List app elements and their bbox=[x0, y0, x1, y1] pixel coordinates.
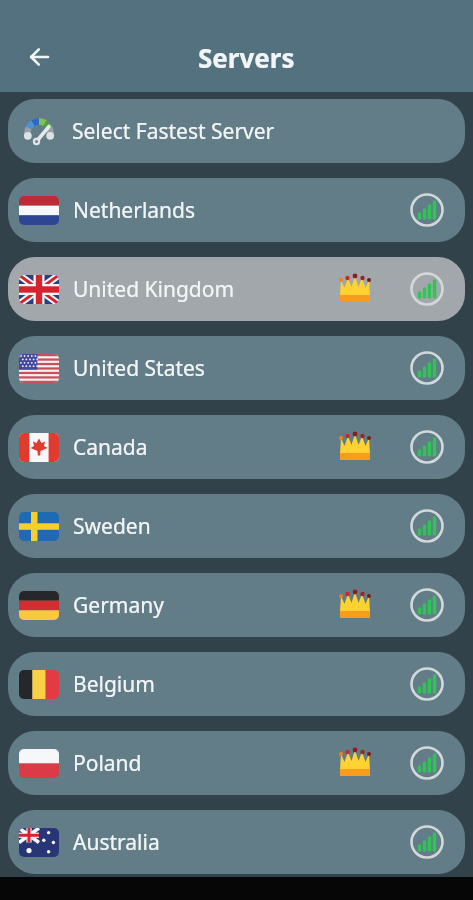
button[interactable]: Sweden bbox=[8, 494, 465, 558]
button[interactable]: Belgium bbox=[8, 652, 465, 716]
button[interactable]: Select Fastest Server bbox=[8, 99, 465, 163]
staticText: Select Fastest Server bbox=[72, 117, 275, 146]
staticText: Germany bbox=[73, 591, 338, 620]
staticText: Belgium bbox=[73, 670, 410, 699]
staticText: United Kingdom bbox=[73, 275, 338, 304]
button[interactable]: United States bbox=[8, 336, 465, 400]
button[interactable]: Poland bbox=[8, 731, 465, 795]
staticText: Canada bbox=[73, 433, 338, 462]
staticText: Netherlands bbox=[73, 196, 410, 225]
staticText: Sweden bbox=[73, 512, 410, 541]
staticText: Poland bbox=[73, 749, 338, 778]
button[interactable]: Netherlands bbox=[8, 178, 465, 242]
button[interactable]: Australia bbox=[8, 810, 465, 874]
staticText: Australia bbox=[73, 828, 410, 857]
staticText: Servers bbox=[198, 40, 295, 75]
button[interactable]: Canada bbox=[8, 415, 465, 479]
button[interactable] bbox=[21, 39, 57, 75]
button[interactable]: United Kingdom bbox=[8, 257, 465, 321]
button[interactable]: Germany bbox=[8, 573, 465, 637]
staticText: United States bbox=[73, 354, 410, 383]
